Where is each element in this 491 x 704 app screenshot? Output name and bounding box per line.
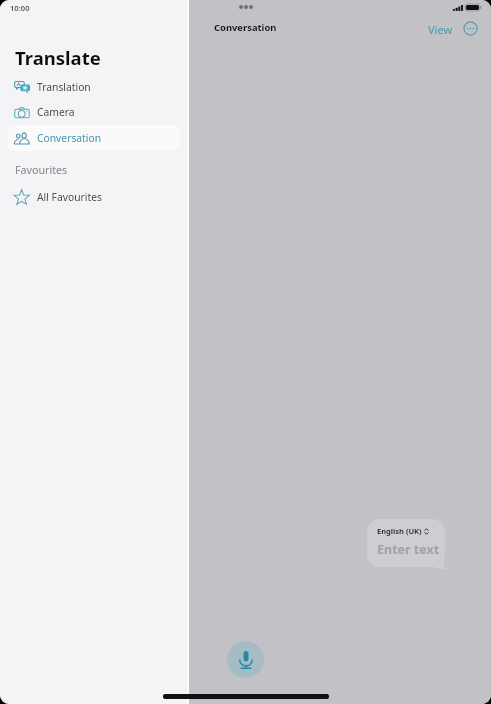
- staticText: Conversation: [214, 21, 277, 34]
- button[interactable]: More options: [463, 21, 478, 36]
- staticText: English (UK): [377, 526, 422, 536]
- staticText: Translate: [15, 45, 101, 70]
- staticText: Translation: [37, 80, 91, 94]
- button[interactable]: Camera: [8, 99, 180, 125]
- staticText: All Favourites: [37, 190, 102, 204]
- button[interactable]: Conversation: [8, 125, 180, 151]
- staticText: Favourites: [15, 163, 68, 178]
- staticText: Conversation: [37, 131, 102, 145]
- staticText: View: [428, 22, 453, 37]
- button[interactable]: Multitasking options: [239, 5, 253, 9]
- button[interactable]: Translation: [8, 74, 180, 100]
- staticText: 10:00: [10, 3, 30, 13]
- button[interactable]: English (UK): [367, 519, 445, 567]
- staticText: Camera: [37, 105, 75, 119]
- staticText: Enter text: [377, 541, 440, 558]
- button[interactable]: All Favourites: [8, 184, 180, 210]
- button[interactable]: View: [424, 18, 457, 41]
- button[interactable]: Microphone: [227, 641, 264, 678]
